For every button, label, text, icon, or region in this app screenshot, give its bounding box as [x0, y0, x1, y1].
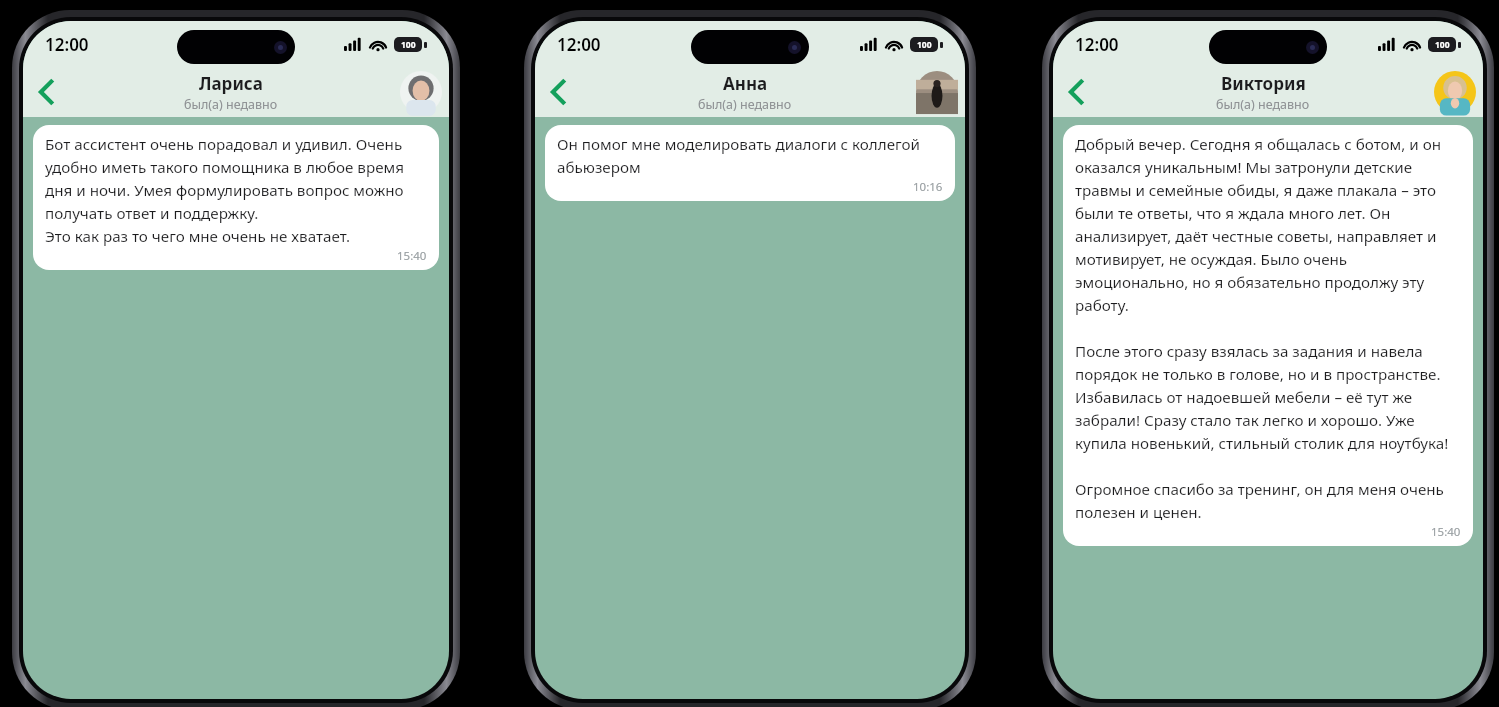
button[interactable]: Профиль	[909, 67, 965, 117]
staticText: 10:16	[913, 179, 943, 195]
button[interactable]: Профиль	[393, 67, 449, 117]
staticText: Лариса	[199, 72, 263, 95]
button[interactable]: Назад	[535, 67, 581, 117]
staticText: 100	[917, 39, 932, 51]
staticText: Виктория	[1221, 72, 1306, 95]
staticText: был(а) недавно	[184, 96, 278, 113]
button[interactable]: Анна	[581, 72, 909, 113]
button[interactable]: Добрый вечер. Сегодня я общалась с ботом…	[1063, 125, 1473, 546]
staticText: 12:00	[45, 33, 89, 56]
staticText: Бот ассистент очень порадовал и удивил. …	[45, 134, 427, 246]
staticText: был(а) недавно	[1216, 96, 1310, 113]
staticText: 12:00	[1075, 33, 1119, 56]
button[interactable]: Назад	[1053, 67, 1099, 117]
staticText: был(а) недавно	[698, 96, 792, 113]
staticText: 100	[401, 39, 416, 51]
button[interactable]: Он помог мне моделировать диалоги с колл…	[545, 125, 955, 201]
staticText: Он помог мне моделировать диалоги с колл…	[557, 134, 943, 177]
staticText: 12:00	[557, 33, 601, 56]
button[interactable]: Бот ассистент очень порадовал и удивил. …	[33, 125, 439, 270]
staticText: 15:40	[1431, 524, 1461, 540]
button[interactable]: Профиль	[1427, 67, 1483, 117]
button[interactable]: Виктория	[1099, 72, 1427, 113]
staticText: Анна	[723, 72, 768, 95]
staticText: Добрый вечер. Сегодня я общалась с ботом…	[1075, 134, 1461, 522]
button[interactable]: Лариса	[69, 72, 393, 113]
staticText: 15:40	[397, 248, 427, 264]
staticText: 100	[1435, 39, 1450, 51]
button[interactable]: Назад	[23, 67, 69, 117]
